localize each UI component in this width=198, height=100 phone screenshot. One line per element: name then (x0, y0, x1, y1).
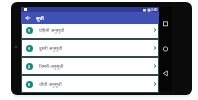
other: Navigation bar (159, 7, 172, 91)
staticText: पहिली अनुसूची (39, 27, 65, 33)
staticText: दुसरी अनुसूची (39, 45, 63, 51)
staticText: तिसरी अनुसूची (39, 63, 64, 69)
staticText: ४ (28, 82, 31, 87)
staticText: 2:00 (151, 8, 158, 12)
button[interactable]: ४ (21, 75, 159, 93)
button[interactable]: १ (21, 21, 159, 39)
staticText: चौथी अनुसूची (39, 81, 62, 87)
staticText: सूची (36, 15, 44, 22)
button[interactable]: २ (21, 39, 159, 57)
staticText: २ (28, 46, 31, 51)
staticText: १ (28, 28, 31, 33)
button[interactable]: ३ (21, 57, 159, 75)
button[interactable]: Back (25, 15, 31, 21)
staticText: ३ (28, 64, 31, 69)
